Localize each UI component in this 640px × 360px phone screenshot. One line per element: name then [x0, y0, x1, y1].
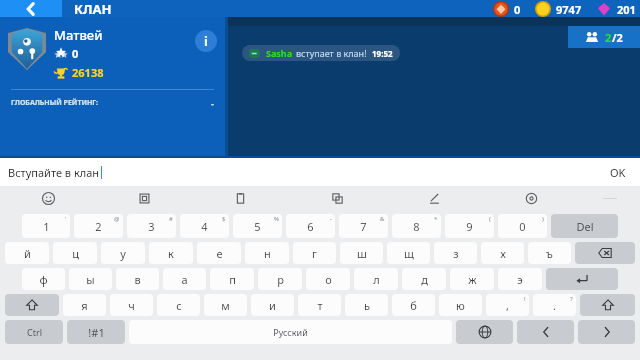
staticText: э: [517, 272, 523, 287]
button[interactable]: Вступайте в клан: [8, 165, 604, 180]
button[interactable]: .: [533, 294, 576, 316]
button[interactable]: OK: [604, 161, 632, 184]
button[interactable]: г: [293, 242, 336, 264]
button[interactable]: о: [306, 268, 350, 290]
button[interactable]: Backspace: [575, 242, 635, 264]
staticText: д: [421, 272, 428, 287]
button[interactable]: ф: [22, 268, 65, 290]
button[interactable]: 1: [22, 214, 70, 238]
button[interactable]: 9747: [535, 1, 582, 17]
button[interactable]: 0: [493, 1, 521, 17]
button[interactable]: Ctrl: [5, 320, 63, 344]
staticText: -: [211, 97, 214, 109]
staticText: р: [277, 272, 284, 287]
staticText: 4: [201, 219, 208, 234]
button[interactable]: Handwriting: [386, 186, 483, 210]
button[interactable]: ч: [110, 294, 153, 316]
staticText: и: [269, 298, 276, 313]
staticText: е: [216, 246, 223, 261]
button[interactable]: Info: [195, 30, 217, 52]
staticText: у: [120, 246, 126, 261]
staticText: ы: [86, 272, 95, 287]
button[interactable]: Previous: [517, 320, 574, 344]
button[interactable]: й: [5, 242, 49, 264]
button[interactable]: н: [245, 242, 289, 264]
staticText: щ: [404, 246, 414, 261]
button[interactable]: Shift: [580, 294, 635, 316]
button[interactable]: Shift: [5, 294, 59, 316]
staticText: ф: [39, 272, 48, 287]
button[interactable]: 2: [74, 214, 123, 238]
button[interactable]: м: [204, 294, 247, 316]
staticText: т: [317, 298, 323, 313]
button[interactable]: э: [498, 268, 542, 290]
button[interactable]: Del: [551, 214, 618, 238]
staticText: ,: [506, 298, 509, 313]
button[interactable]: 201: [596, 1, 636, 17]
button[interactable]: д: [402, 268, 446, 290]
button[interactable]: Back: [0, 0, 62, 17]
staticText: ч: [128, 298, 135, 313]
button[interactable]: Enter: [546, 268, 618, 290]
button[interactable]: Emoji: [0, 186, 96, 210]
button[interactable]: ъ: [528, 242, 571, 264]
button[interactable]: 9: [445, 214, 494, 238]
staticText: й: [24, 246, 31, 261]
button[interactable]: у: [101, 242, 145, 264]
button[interactable]: 8: [392, 214, 441, 238]
button[interactable]: ю: [439, 294, 482, 316]
button[interactable]: в: [116, 268, 159, 290]
button[interactable]: 0: [498, 214, 547, 238]
staticText: ': [65, 215, 67, 223]
button[interactable]: с: [157, 294, 200, 316]
button[interactable]: Next: [578, 320, 635, 344]
button[interactable]: 4: [180, 214, 229, 238]
button[interactable]: 2: [568, 26, 640, 48]
button[interactable]: е: [197, 242, 241, 264]
button[interactable]: ш: [340, 242, 383, 264]
staticText: КЛАН: [74, 0, 112, 17]
staticText: 0: [72, 46, 79, 61]
staticText: (: [489, 215, 491, 223]
button[interactable]: 7: [339, 214, 388, 238]
button[interactable]: и: [251, 294, 294, 316]
button[interactable]: л: [354, 268, 398, 290]
button[interactable]: з: [434, 242, 477, 264]
button[interactable]: 5: [233, 214, 282, 238]
button[interactable]: Translate: [289, 186, 386, 210]
staticText: *: [434, 215, 438, 223]
staticText: 8: [413, 219, 420, 234]
button[interactable]: ы: [69, 268, 112, 290]
button[interactable]: Change language: [456, 320, 513, 344]
button[interactable]: ж: [450, 268, 494, 290]
button[interactable]: а: [163, 268, 206, 290]
staticText: я: [81, 298, 88, 313]
button[interactable]: я: [63, 294, 106, 316]
staticText: !: [524, 295, 526, 303]
staticText: ?: [570, 295, 573, 303]
button[interactable]: Русский: [129, 320, 452, 344]
button[interactable]: б: [392, 294, 435, 316]
button[interactable]: п: [210, 268, 254, 290]
button[interactable]: р: [258, 268, 302, 290]
staticText: 7: [360, 219, 367, 234]
button[interactable]: ц: [53, 242, 97, 264]
button[interactable]: ь: [345, 294, 388, 316]
button[interactable]: ,: [486, 294, 529, 316]
button[interactable]: Stickers: [96, 186, 192, 210]
button[interactable]: х: [481, 242, 524, 264]
button[interactable]: щ: [387, 242, 430, 264]
staticText: 1: [43, 219, 50, 234]
staticText: 201: [617, 2, 636, 17]
button[interactable]: !#1: [67, 320, 125, 344]
button[interactable]: 3: [127, 214, 176, 238]
staticText: @: [114, 215, 120, 223]
staticText: л: [373, 272, 380, 287]
button[interactable]: к: [149, 242, 193, 264]
staticText: к: [168, 246, 174, 261]
button[interactable]: Clipboard: [192, 186, 289, 210]
button[interactable]: Settings: [483, 186, 580, 210]
button[interactable]: т: [298, 294, 341, 316]
button[interactable]: 6: [286, 214, 335, 238]
